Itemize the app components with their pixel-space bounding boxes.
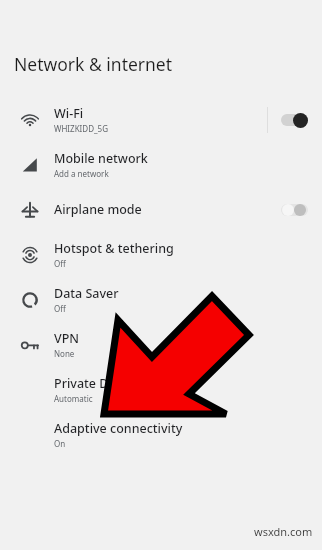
- staticText: Mobile network: [54, 150, 148, 167]
- staticText: Adaptive connectivity: [54, 420, 183, 437]
- button[interactable]: Airplane mode: [0, 187, 322, 232]
- button[interactable]: Private DNS: [0, 367, 322, 412]
- staticText: Hotspot & tethering: [54, 240, 174, 257]
- staticText: None: [54, 348, 75, 359]
- button[interactable]: Wi-Fi switch, on: [279, 111, 311, 129]
- button[interactable]: Airplane mode switch, off: [279, 201, 311, 219]
- staticText: WHIZKIDD_5G: [54, 123, 108, 134]
- staticText: Private DNS: [54, 375, 125, 392]
- button[interactable]: Wi-Fi: [0, 97, 322, 142]
- button[interactable]: Adaptive connectivity: [0, 412, 322, 457]
- staticText: Data Saver: [54, 285, 119, 302]
- staticText: VPN: [54, 330, 80, 347]
- staticText: Network & internet: [14, 52, 173, 76]
- staticText: Off: [54, 303, 66, 314]
- button[interactable]: VPN: [0, 322, 322, 367]
- staticText: Automatic: [54, 393, 93, 404]
- staticText: On: [54, 438, 66, 449]
- staticText: Add a network: [54, 168, 109, 179]
- button[interactable]: Hotspot & tethering: [0, 232, 322, 277]
- button[interactable]: Data Saver: [0, 277, 322, 322]
- button[interactable]: Mobile network: [0, 142, 322, 187]
- staticText: Wi-Fi: [54, 105, 84, 122]
- staticText: Airplane mode: [54, 201, 142, 218]
- staticText: Off: [54, 258, 66, 269]
- staticText: wsxdn.com: [254, 524, 313, 539]
